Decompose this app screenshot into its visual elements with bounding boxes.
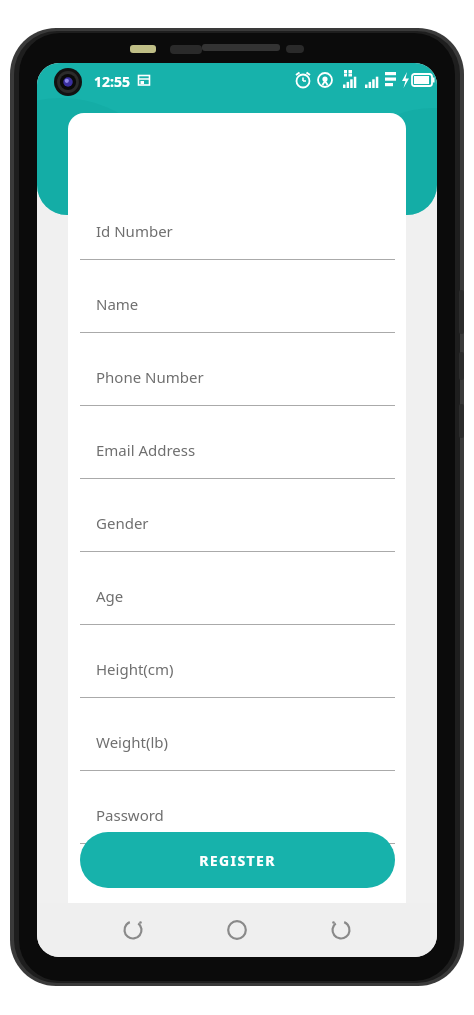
- button[interactable]: Recent apps: [115, 912, 151, 948]
- staticText: Id Number: [96, 221, 173, 241]
- staticText: Age: [96, 586, 124, 606]
- staticText: Height(cm): [96, 659, 174, 679]
- button[interactable]: Gender: [80, 493, 395, 555]
- staticText: Gender: [96, 513, 149, 533]
- button[interactable]: Weight(lb): [80, 712, 395, 774]
- staticText: Password: [96, 805, 164, 825]
- staticText: Phone Number: [96, 367, 204, 387]
- button[interactable]: Email Address: [80, 420, 395, 482]
- staticText: Name: [96, 294, 139, 314]
- staticText: REGISTER: [199, 851, 276, 870]
- button[interactable]: Height(cm): [80, 639, 395, 701]
- staticText: Weight(lb): [96, 732, 168, 752]
- button[interactable]: Age: [80, 566, 395, 628]
- button[interactable]: Phone Number: [80, 347, 395, 409]
- staticText: 12:55: [94, 72, 130, 91]
- staticText: Email Address: [96, 440, 196, 460]
- button[interactable]: Back: [323, 912, 359, 948]
- button[interactable]: Password: [80, 785, 395, 847]
- button[interactable]: Home: [219, 912, 255, 948]
- button[interactable]: Id Number: [80, 201, 395, 263]
- button[interactable]: REGISTER: [80, 832, 395, 888]
- button[interactable]: Name: [80, 274, 395, 336]
